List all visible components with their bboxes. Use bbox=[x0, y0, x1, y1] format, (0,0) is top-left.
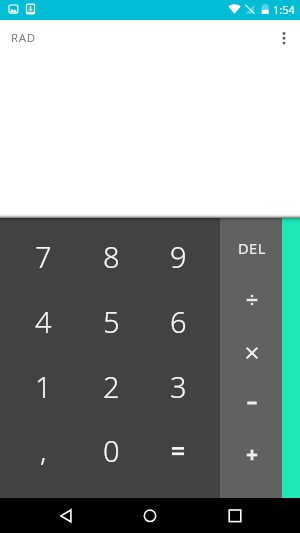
button[interactable]: divide bbox=[220, 274, 282, 330]
staticText: 0 bbox=[103, 431, 120, 470]
staticText: , bbox=[40, 430, 47, 469]
button[interactable]: minus bbox=[220, 386, 282, 442]
staticText: 6 bbox=[170, 302, 187, 341]
button[interactable]: 7 bbox=[0, 218, 73, 288]
staticText: 5 bbox=[103, 302, 120, 341]
staticText: 7 bbox=[35, 237, 52, 276]
button[interactable]: DEL bbox=[220, 218, 282, 274]
button[interactable]: Back bbox=[48, 498, 84, 533]
staticText: 8 bbox=[103, 237, 120, 276]
staticText: 2 bbox=[103, 367, 120, 406]
other: equals bbox=[169, 441, 189, 461]
staticText: 1:54 bbox=[273, 2, 295, 17]
button[interactable]: 9 bbox=[147, 218, 220, 288]
button[interactable]: 8 bbox=[73, 218, 146, 288]
staticText: RAD bbox=[11, 30, 36, 46]
button[interactable]: 5 bbox=[73, 288, 146, 358]
button[interactable]: equals bbox=[147, 428, 220, 498]
staticText: 3 bbox=[170, 367, 187, 406]
staticText: 4 bbox=[35, 302, 52, 341]
button[interactable]: plus bbox=[220, 442, 282, 498]
staticText: 9 bbox=[170, 237, 187, 276]
button[interactable]: Home bbox=[132, 498, 168, 533]
staticText: 1 bbox=[35, 367, 52, 406]
button[interactable]: , bbox=[0, 428, 73, 498]
button[interactable]: 6 bbox=[147, 288, 220, 358]
button[interactable]: More options bbox=[272, 21, 296, 53]
button[interactable]: 3 bbox=[147, 358, 220, 428]
button[interactable]: 4 bbox=[0, 288, 73, 358]
button[interactable]: Recent apps bbox=[217, 498, 253, 533]
staticText: DEL bbox=[238, 238, 266, 258]
button[interactable]: 0 bbox=[73, 428, 146, 498]
button[interactable]: times bbox=[220, 330, 282, 386]
button[interactable]: 1 bbox=[0, 358, 73, 428]
button[interactable]: 2 bbox=[73, 358, 146, 428]
